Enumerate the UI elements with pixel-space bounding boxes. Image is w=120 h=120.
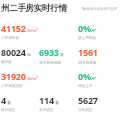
- button[interactable]: 州二手房实时行情: [0, 0, 120, 16]
- button[interactable]: 31920: [1, 70, 39, 88]
- staticText: 昨日成交: [1, 108, 16, 112]
- staticText: 31920: [1, 70, 26, 82]
- button[interactable]: 80024: [1, 46, 39, 64]
- staticText: 0%: [78, 22, 91, 34]
- button[interactable]: 114: [39, 94, 78, 112]
- button[interactable]: 41152: [1, 22, 39, 40]
- staticText: 二手房成交价: [1, 84, 23, 88]
- staticText: 5627: [78, 94, 98, 106]
- staticText: 套: [60, 52, 64, 57]
- button[interactable]: 0%: [78, 22, 117, 40]
- button[interactable]: 6933: [39, 46, 78, 64]
- staticText: 4: [1, 94, 6, 106]
- staticText: 元/m²: [27, 28, 38, 33]
- staticText: 二手房均价: [1, 36, 19, 40]
- staticText: 较上月环比: [78, 36, 96, 40]
- staticText: 114: [39, 94, 54, 106]
- staticText: 30天带看量: [78, 60, 97, 64]
- staticText: 环比上月: [78, 84, 93, 88]
- button[interactable]: 4: [1, 94, 39, 112]
- staticText: 元: [27, 52, 31, 57]
- staticText: 元/m²: [27, 76, 38, 81]
- button[interactable]: 0%: [78, 70, 117, 88]
- staticText: *数据统计来自房产交易: [81, 6, 117, 11]
- staticText: 本月成交: [39, 108, 54, 112]
- staticText: 1561: [78, 46, 98, 58]
- staticText: 州二手房实时行情: [1, 3, 67, 14]
- staticText: 6933: [39, 46, 59, 58]
- staticText: 0%: [78, 70, 91, 82]
- staticText: 最高价: [1, 60, 12, 64]
- staticText: 41152: [1, 22, 26, 34]
- staticText: 套: [7, 100, 11, 105]
- staticText: 套: [55, 100, 59, 105]
- button[interactable]: 5627: [78, 94, 117, 112]
- staticText: 80024: [1, 46, 26, 58]
- staticText: 30天新房源量: [39, 60, 62, 64]
- staticText: 今年成交: [78, 108, 93, 112]
- button[interactable]: 1561: [78, 46, 117, 64]
